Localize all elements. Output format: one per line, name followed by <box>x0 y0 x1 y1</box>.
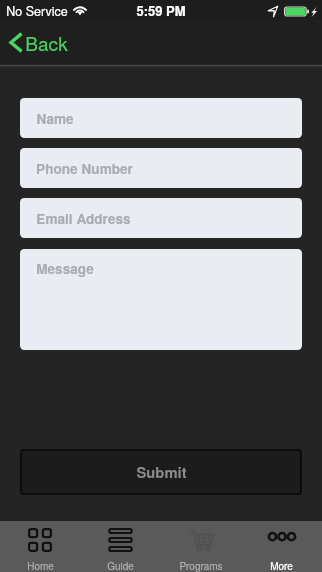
staticText: Message <box>36 259 94 278</box>
staticText: Phone Number <box>36 159 133 178</box>
staticText: Back <box>25 29 68 56</box>
button[interactable]: Message <box>20 249 302 350</box>
staticText: Name <box>36 109 74 128</box>
button[interactable]: Submit <box>20 449 302 495</box>
button[interactable]: Programs <box>160 521 241 572</box>
staticText: Email Address <box>36 209 131 228</box>
staticText: Guide <box>107 559 134 572</box>
button[interactable]: Email Address <box>20 198 302 238</box>
staticText: Submit <box>136 461 187 482</box>
staticText: No Service <box>6 2 68 20</box>
button[interactable]: Guide <box>80 521 160 572</box>
staticText: Programs <box>179 559 223 572</box>
button[interactable]: Phone Number <box>20 148 302 188</box>
staticText: More <box>270 559 293 572</box>
button[interactable]: Back <box>0 23 82 62</box>
button[interactable]: Home <box>0 521 80 572</box>
staticText: Home <box>27 559 54 572</box>
staticText: 5:59 PM <box>136 1 186 20</box>
button[interactable]: More <box>241 521 322 572</box>
button[interactable]: Name <box>20 98 302 138</box>
